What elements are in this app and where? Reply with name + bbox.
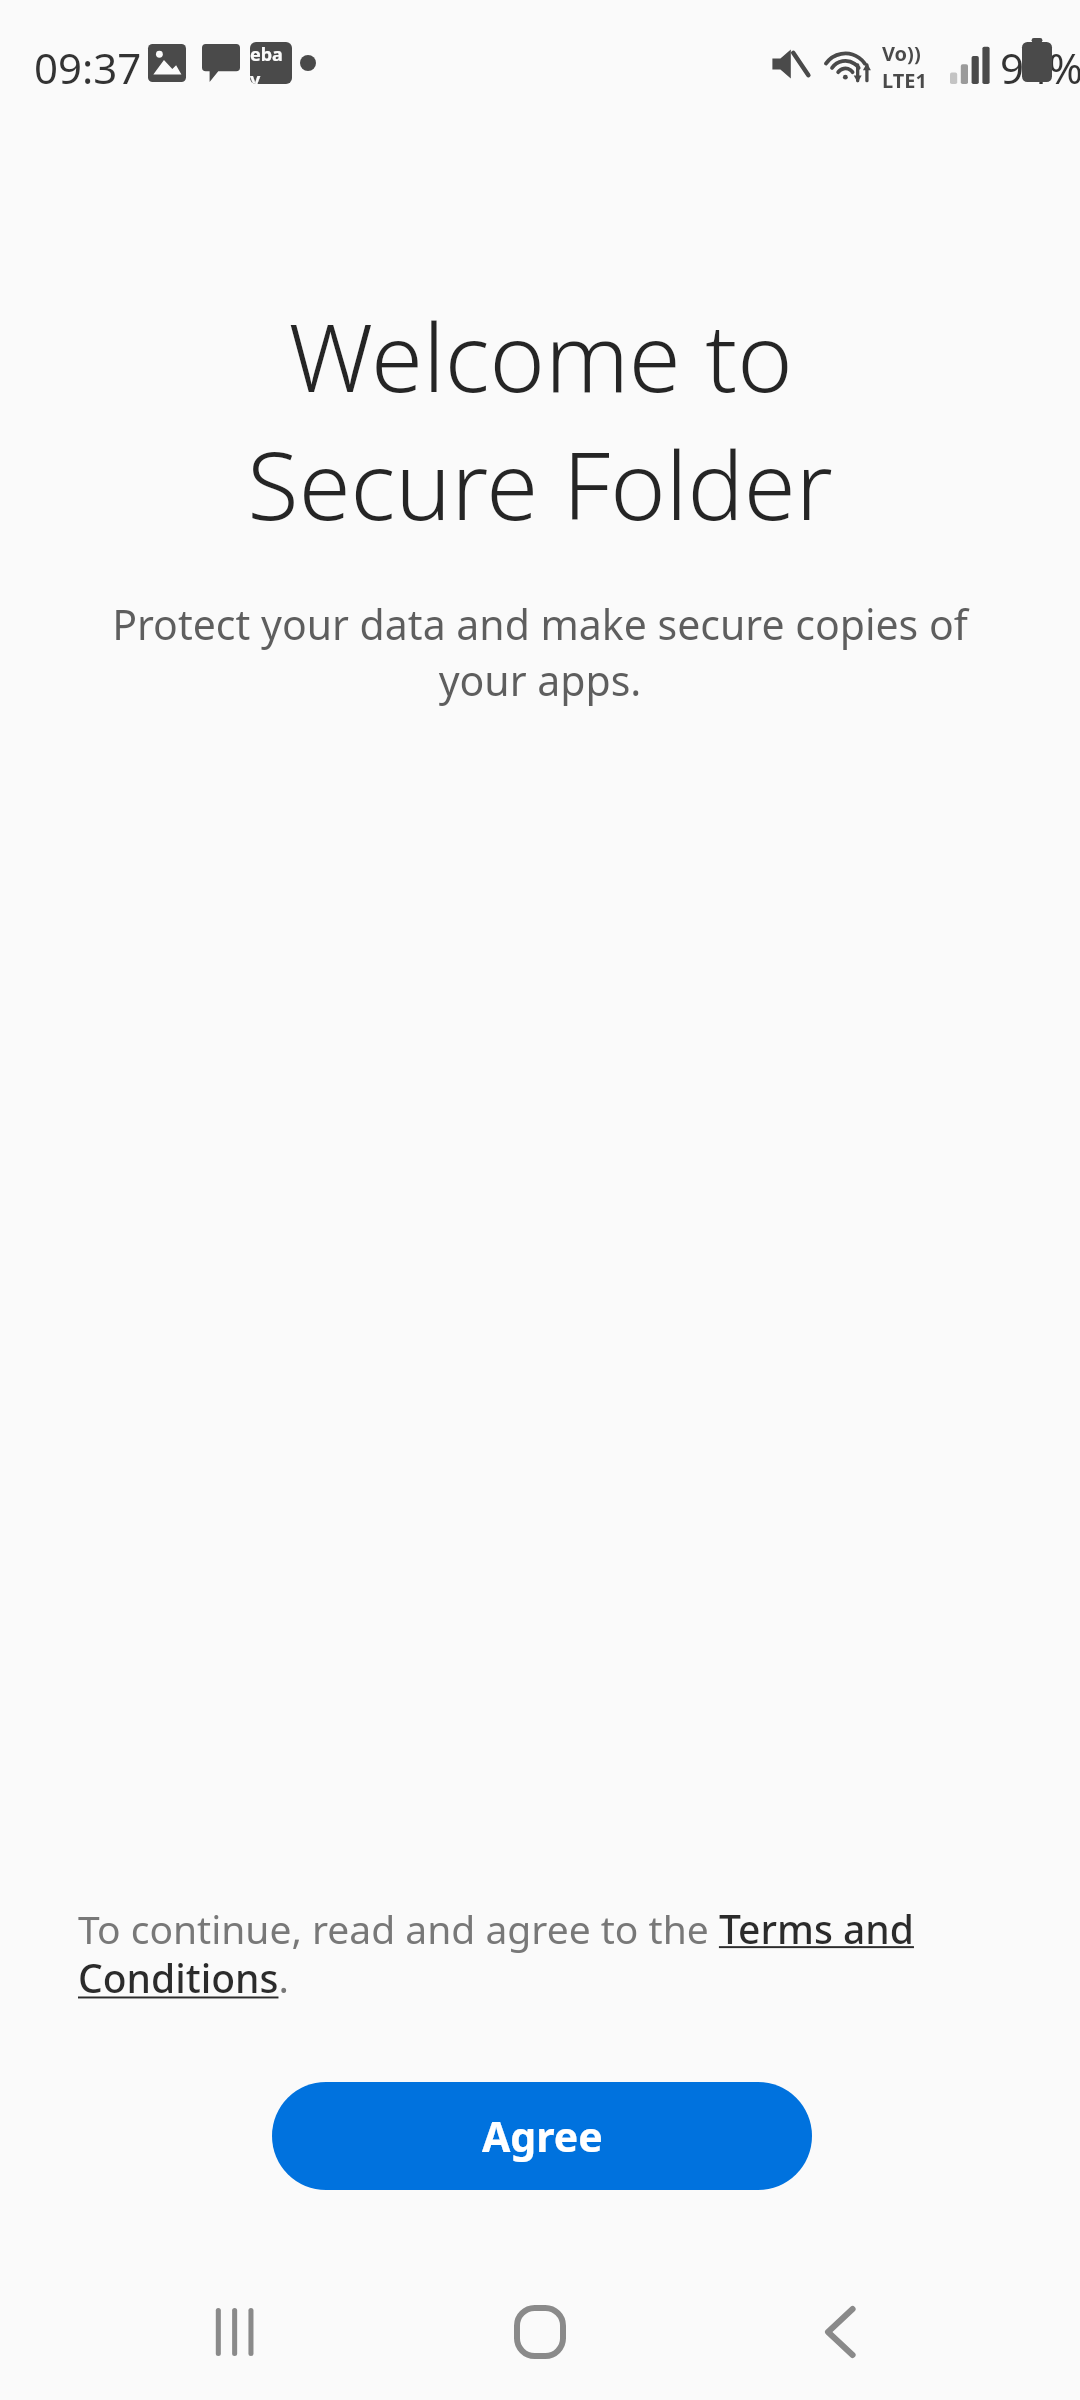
staticText: Protect your data and make secure copies… xyxy=(72,596,1008,708)
staticText: LTE1 xyxy=(882,67,927,94)
button[interactable]: Agree xyxy=(272,2082,812,2190)
staticText: 94% xyxy=(1000,39,1080,96)
staticText: Secure Folder xyxy=(247,420,833,548)
staticText: Agree xyxy=(482,2108,603,2164)
button[interactable]: Home xyxy=(465,2262,615,2400)
staticText: ebay xyxy=(250,42,292,84)
button[interactable]: To continue, read and agree to the Terms… xyxy=(78,1902,1006,2005)
staticText: 09:37 xyxy=(34,39,142,96)
button[interactable]: Recent apps xyxy=(160,2262,310,2400)
staticText: Welcome to xyxy=(288,292,793,420)
button[interactable]: Back xyxy=(765,2262,915,2400)
staticText: Vo)) xyxy=(882,40,921,67)
